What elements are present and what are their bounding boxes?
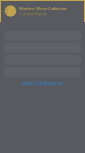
staticText: View Full Website — [22, 80, 63, 87]
button[interactable]: View Full Website — [0, 79, 85, 88]
staticText: Curated Objects — [19, 11, 47, 16]
staticText: Modern Muse Collection — [19, 6, 67, 11]
